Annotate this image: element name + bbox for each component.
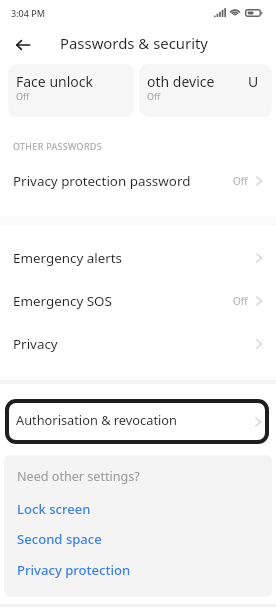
- staticText: U: [248, 72, 259, 91]
- button[interactable]: Emergency alerts: [0, 236, 276, 279]
- button[interactable]: oth device: [139, 64, 272, 117]
- staticText: Off: [147, 90, 161, 102]
- button[interactable]: Authorisation & revocation: [5, 399, 269, 444]
- staticText: 3:04 PM: [11, 7, 45, 19]
- staticText: Off: [233, 174, 248, 188]
- button[interactable]: Privacy protection password: [0, 159, 276, 202]
- staticText: Need other settings?: [17, 468, 140, 485]
- staticText: Privacy: [13, 335, 256, 353]
- staticText: Emergency alerts: [13, 249, 256, 267]
- button[interactable]: Emergency SOS: [0, 279, 276, 322]
- staticText: Off: [16, 90, 30, 102]
- staticText: Emergency SOS: [13, 292, 233, 310]
- button[interactable]: Lock screen: [17, 500, 91, 518]
- staticText: oth device: [147, 72, 215, 91]
- button[interactable]: Back: [7, 29, 39, 61]
- staticText: Face unlock: [16, 72, 93, 91]
- button[interactable]: Privacy: [0, 322, 276, 365]
- button[interactable]: Second space: [17, 530, 102, 548]
- button[interactable]: Privacy protection: [17, 561, 131, 579]
- staticText: OTHER PASSWORDS: [13, 140, 102, 152]
- staticText: Privacy protection password: [13, 172, 233, 190]
- staticText: Authorisation & revocation: [16, 411, 255, 428]
- button[interactable]: Face unlock: [8, 64, 134, 117]
- staticText: Passwords & security: [60, 33, 208, 53]
- staticText: Off: [233, 294, 248, 308]
